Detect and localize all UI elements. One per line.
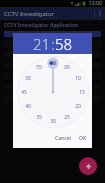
staticText: 40 (25, 103, 31, 110)
button[interactable] (4, 40, 101, 47)
staticText: 35 (36, 114, 42, 121)
staticText: Cancel (55, 135, 71, 142)
button[interactable] (4, 84, 101, 91)
staticText: 55 (36, 64, 42, 71)
staticText: 50 (25, 75, 31, 82)
button[interactable]: 10 minutes (73, 73, 83, 83)
staticText: 00 (50, 60, 56, 67)
button[interactable]: 45 minutes (19, 87, 29, 97)
button[interactable] (4, 95, 101, 102)
button[interactable] (4, 31, 101, 37)
button[interactable]: 05 minutes (62, 62, 72, 72)
staticText: CCTV Investigator (4, 10, 55, 18)
staticText: 30 (50, 118, 56, 125)
staticText: 45 (21, 89, 27, 96)
staticText: 10 (75, 75, 81, 82)
staticText: : (51, 34, 55, 54)
button[interactable] (4, 62, 101, 69)
button[interactable]: Add camera (79, 157, 97, 175)
staticText: 12:00 (89, 0, 102, 7)
button[interactable]: 35 minutes (34, 112, 44, 122)
button[interactable]: 21 (33, 34, 51, 54)
button[interactable]: 58 (55, 34, 73, 54)
button[interactable]: 15 minutes (77, 87, 87, 97)
button[interactable]: 25 minutes (62, 112, 72, 122)
button[interactable]: 30 minutes (48, 116, 58, 126)
button[interactable]: 40 minutes (23, 101, 33, 111)
staticText: OK (79, 135, 87, 142)
staticText: 25 (64, 114, 70, 121)
button[interactable]: 20 minutes (73, 101, 83, 111)
button[interactable]: More options (95, 7, 105, 20)
button[interactable] (4, 51, 101, 58)
staticText: CCTV Investigator Application (4, 22, 79, 29)
button[interactable]: 55 minutes (34, 62, 44, 72)
button[interactable]: 00 minutes (48, 58, 58, 68)
staticText: 15 (79, 89, 85, 96)
button[interactable]: OK (76, 132, 90, 145)
button[interactable]: 50 minutes (23, 73, 33, 83)
button[interactable] (4, 73, 101, 80)
button[interactable]: Cancel (52, 132, 74, 145)
staticText: 05 (64, 64, 70, 71)
staticText: 20 (75, 103, 81, 110)
